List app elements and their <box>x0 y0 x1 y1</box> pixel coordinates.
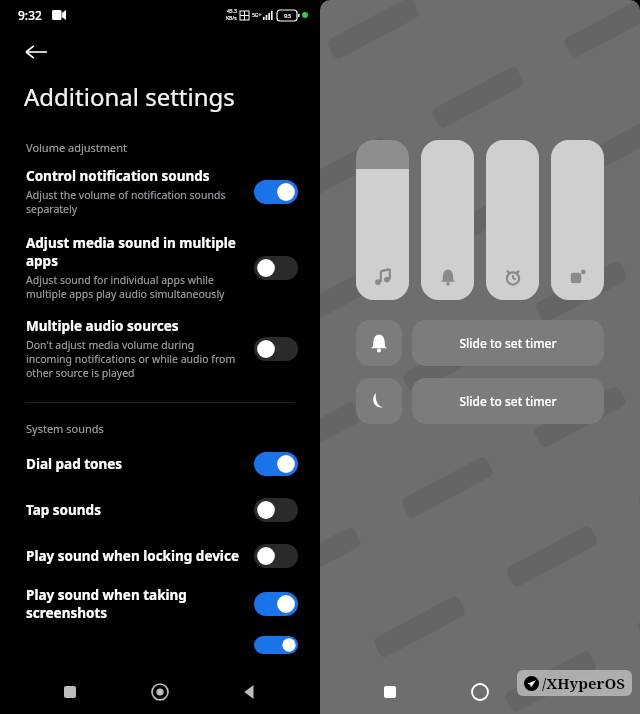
button[interactable]: Play sound when locking device <box>0 544 320 568</box>
button[interactable]: Slide to set timer <box>412 378 604 424</box>
staticText: Volume adjustment <box>26 140 128 155</box>
staticText: Adjust sound for individual apps while m… <box>26 273 240 301</box>
button[interactable]: On <box>254 452 298 476</box>
button[interactable]: Tap sounds <box>0 498 320 522</box>
staticText: KB/s <box>226 15 237 22</box>
button[interactable]: Ring mode <box>356 320 402 366</box>
button[interactable]: Media volume <box>356 140 409 300</box>
staticText: Play sound when locking device <box>26 547 240 565</box>
button[interactable]: Control notification sounds <box>0 167 320 216</box>
staticText: 93 <box>284 12 291 20</box>
button[interactable]: Back <box>14 30 58 74</box>
button[interactable]: On <box>254 592 298 616</box>
staticText: 5G+ <box>252 12 262 19</box>
staticText: Control notification sounds <box>26 167 210 185</box>
button[interactable]: Back <box>230 672 270 712</box>
button[interactable]: Alarm volume <box>486 140 539 300</box>
staticText: Dial pad tones <box>26 455 240 473</box>
button[interactable]: Off <box>254 498 298 522</box>
button[interactable]: Adjust media sound in multiple apps <box>0 234 320 301</box>
staticText: Multiple audio sources <box>26 317 179 335</box>
button[interactable]: Play sound when taking screenshots <box>0 586 320 622</box>
staticText: Slide to set timer <box>459 393 557 409</box>
staticText: Adjust media sound in multiple apps <box>26 234 240 270</box>
button[interactable]: Do not disturb <box>356 378 402 424</box>
staticText: Tap sounds <box>26 501 240 519</box>
staticText: 9:32 <box>18 7 42 23</box>
staticText: Don't adjust media volume during incomin… <box>26 338 240 380</box>
button[interactable]: Dial pad tones <box>0 452 320 476</box>
staticText: System sounds <box>26 421 104 436</box>
button[interactable]: Recents <box>370 672 410 712</box>
staticText: 45.3 <box>227 8 237 15</box>
button[interactable]: Recents <box>50 672 90 712</box>
button[interactable]: Notification volume <box>551 140 604 300</box>
button[interactable]: Off <box>254 337 298 361</box>
button[interactable]: Off <box>254 544 298 568</box>
staticText: Additional settings <box>24 80 235 113</box>
button[interactable]: On <box>254 180 298 204</box>
button[interactable]: Off <box>254 256 298 280</box>
button[interactable]: Slide to set timer <box>412 320 604 366</box>
staticText: Slide to set timer <box>459 335 557 351</box>
button[interactable]: Multiple audio sources <box>0 317 320 380</box>
button[interactable]: Ring volume <box>421 140 474 300</box>
staticText: Play sound when taking screenshots <box>26 586 187 622</box>
button[interactable]: Home <box>460 672 500 712</box>
staticText: /XHyperOS <box>542 673 625 693</box>
button[interactable]: Home <box>140 672 180 712</box>
staticText: Adjust the volume of notification sounds… <box>26 188 240 216</box>
